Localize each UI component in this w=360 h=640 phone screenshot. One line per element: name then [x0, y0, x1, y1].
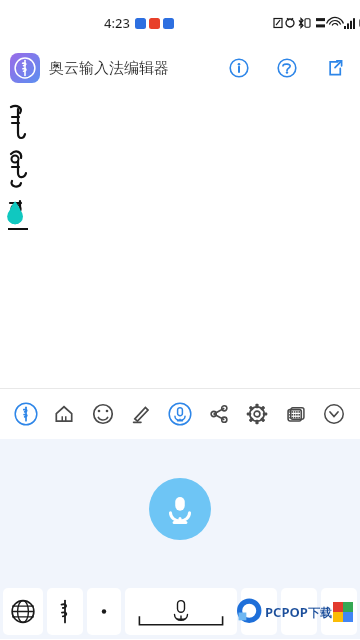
button[interactable]: Hold to speak — [149, 478, 211, 540]
button[interactable]: Mongolian input — [9, 397, 43, 431]
button[interactable]: Info — [224, 53, 254, 83]
staticText: 下载 — [308, 605, 332, 620]
staticText: 奥云输入法编辑器 — [49, 59, 169, 78]
button[interactable]: Handwriting — [124, 397, 158, 431]
button[interactable]: Home — [47, 397, 81, 431]
button[interactable]: Share — [320, 53, 350, 83]
staticText: 4:23 — [104, 14, 130, 32]
button[interactable]: Switch language — [3, 588, 43, 635]
button[interactable]: Emoji — [86, 397, 120, 431]
button[interactable]: Keyboard — [279, 397, 313, 431]
button[interactable]: Enter — [321, 588, 357, 635]
button[interactable]: Cursor handle — [0, 91, 360, 388]
button[interactable]: Help — [272, 53, 302, 83]
button[interactable]: Symbols — [281, 588, 317, 635]
button[interactable]: Share — [202, 397, 236, 431]
button[interactable]: Space / voice — [125, 588, 237, 635]
button[interactable]: Settings — [240, 397, 274, 431]
button[interactable]: Collapse keyboard — [317, 397, 351, 431]
button[interactable]: Return — [241, 588, 277, 635]
button[interactable]: Mongolian letter — [47, 588, 83, 635]
other: Cursor handle — [5, 201, 29, 229]
button[interactable]: App icon — [10, 53, 40, 83]
button[interactable]: Voice input — [163, 397, 197, 431]
staticText: PCPOP — [265, 603, 308, 621]
button[interactable]: Punctuation — [87, 588, 121, 635]
